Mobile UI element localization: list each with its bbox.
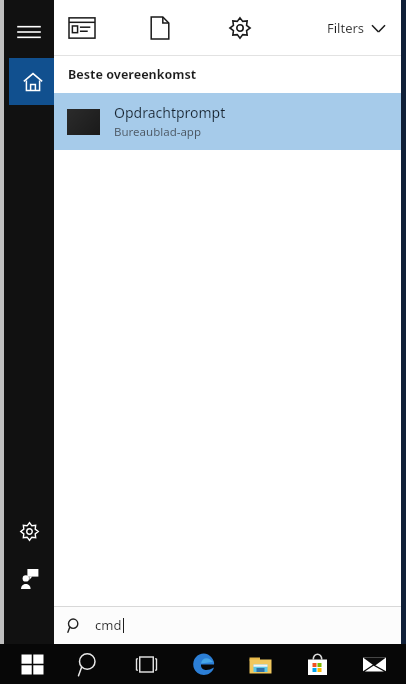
- button[interactable]: Feedback: [4, 556, 54, 602]
- staticText: Filters: [327, 19, 365, 37]
- staticText: cmd: [95, 616, 122, 634]
- staticText: Opdrachtprompt: [114, 103, 226, 122]
- button[interactable]: Apps: [54, 0, 110, 56]
- staticText: Bureaublad-app: [114, 124, 202, 140]
- button[interactable]: cmd: [54, 606, 401, 644]
- button[interactable]: Menu: [4, 10, 54, 54]
- button[interactable]: Documents: [132, 0, 188, 56]
- button[interactable]: Task View: [118, 644, 175, 684]
- button[interactable]: Settings: [212, 0, 268, 56]
- button[interactable]: Filters: [321, 13, 391, 43]
- button[interactable]: Settings: [4, 508, 54, 554]
- button[interactable]: Home: [9, 58, 56, 105]
- button[interactable]: Start: [4, 644, 61, 684]
- button[interactable]: Microsoft Edge: [175, 644, 232, 684]
- button[interactable]: File Explorer: [232, 644, 289, 684]
- button[interactable]: Microsoft Store: [289, 644, 346, 684]
- staticText: Beste overeenkomst: [68, 66, 197, 83]
- button[interactable]: Mail: [346, 644, 403, 684]
- button[interactable]: Opdrachtprompt: [54, 93, 401, 150]
- button[interactable]: Search: [61, 644, 118, 684]
